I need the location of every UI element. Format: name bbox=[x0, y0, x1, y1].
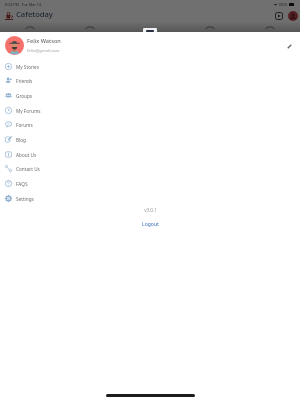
staticText: 8:34 PM Tue Mar 14 bbox=[5, 2, 42, 7]
button[interactable]: Blog bbox=[0, 132, 300, 147]
button[interactable]: Felix Watson bbox=[0, 32, 300, 59]
button[interactable]: Account bbox=[288, 11, 298, 21]
staticText: Logout bbox=[142, 221, 159, 228]
staticText: v3.0.1 bbox=[144, 207, 157, 213]
staticText: About Us bbox=[16, 152, 37, 158]
staticText: My Forums bbox=[16, 108, 41, 114]
staticText: FAQS bbox=[16, 181, 28, 187]
staticText: felix@gmail.com bbox=[27, 48, 60, 54]
staticText: Forums bbox=[16, 122, 33, 128]
button[interactable]: About Us bbox=[0, 147, 300, 162]
staticText: 100% bbox=[278, 2, 288, 7]
staticText: Contact Us bbox=[16, 166, 40, 172]
button[interactable]: Groups bbox=[0, 88, 300, 103]
staticText: Groups bbox=[16, 93, 33, 99]
staticText: Blog bbox=[16, 137, 26, 143]
staticText: Cafetoday bbox=[16, 9, 53, 19]
button[interactable]: Edit profile bbox=[284, 41, 294, 51]
button[interactable]: Scan bbox=[272, 9, 286, 23]
button[interactable]: Friends bbox=[0, 73, 300, 88]
button[interactable]: Contact Us bbox=[0, 161, 300, 176]
button[interactable]: My Forums bbox=[0, 103, 300, 118]
button[interactable]: Logout bbox=[136, 219, 165, 230]
staticText: Felix Watson bbox=[27, 37, 61, 45]
button[interactable]: FAQS bbox=[0, 176, 300, 191]
staticText: Settings bbox=[16, 196, 34, 202]
button[interactable]: Settings bbox=[0, 191, 300, 206]
staticText: My Stories bbox=[16, 64, 39, 70]
staticText: Friends bbox=[16, 78, 33, 84]
button[interactable]: Forums bbox=[0, 117, 300, 132]
button[interactable]: My Stories bbox=[0, 59, 300, 74]
